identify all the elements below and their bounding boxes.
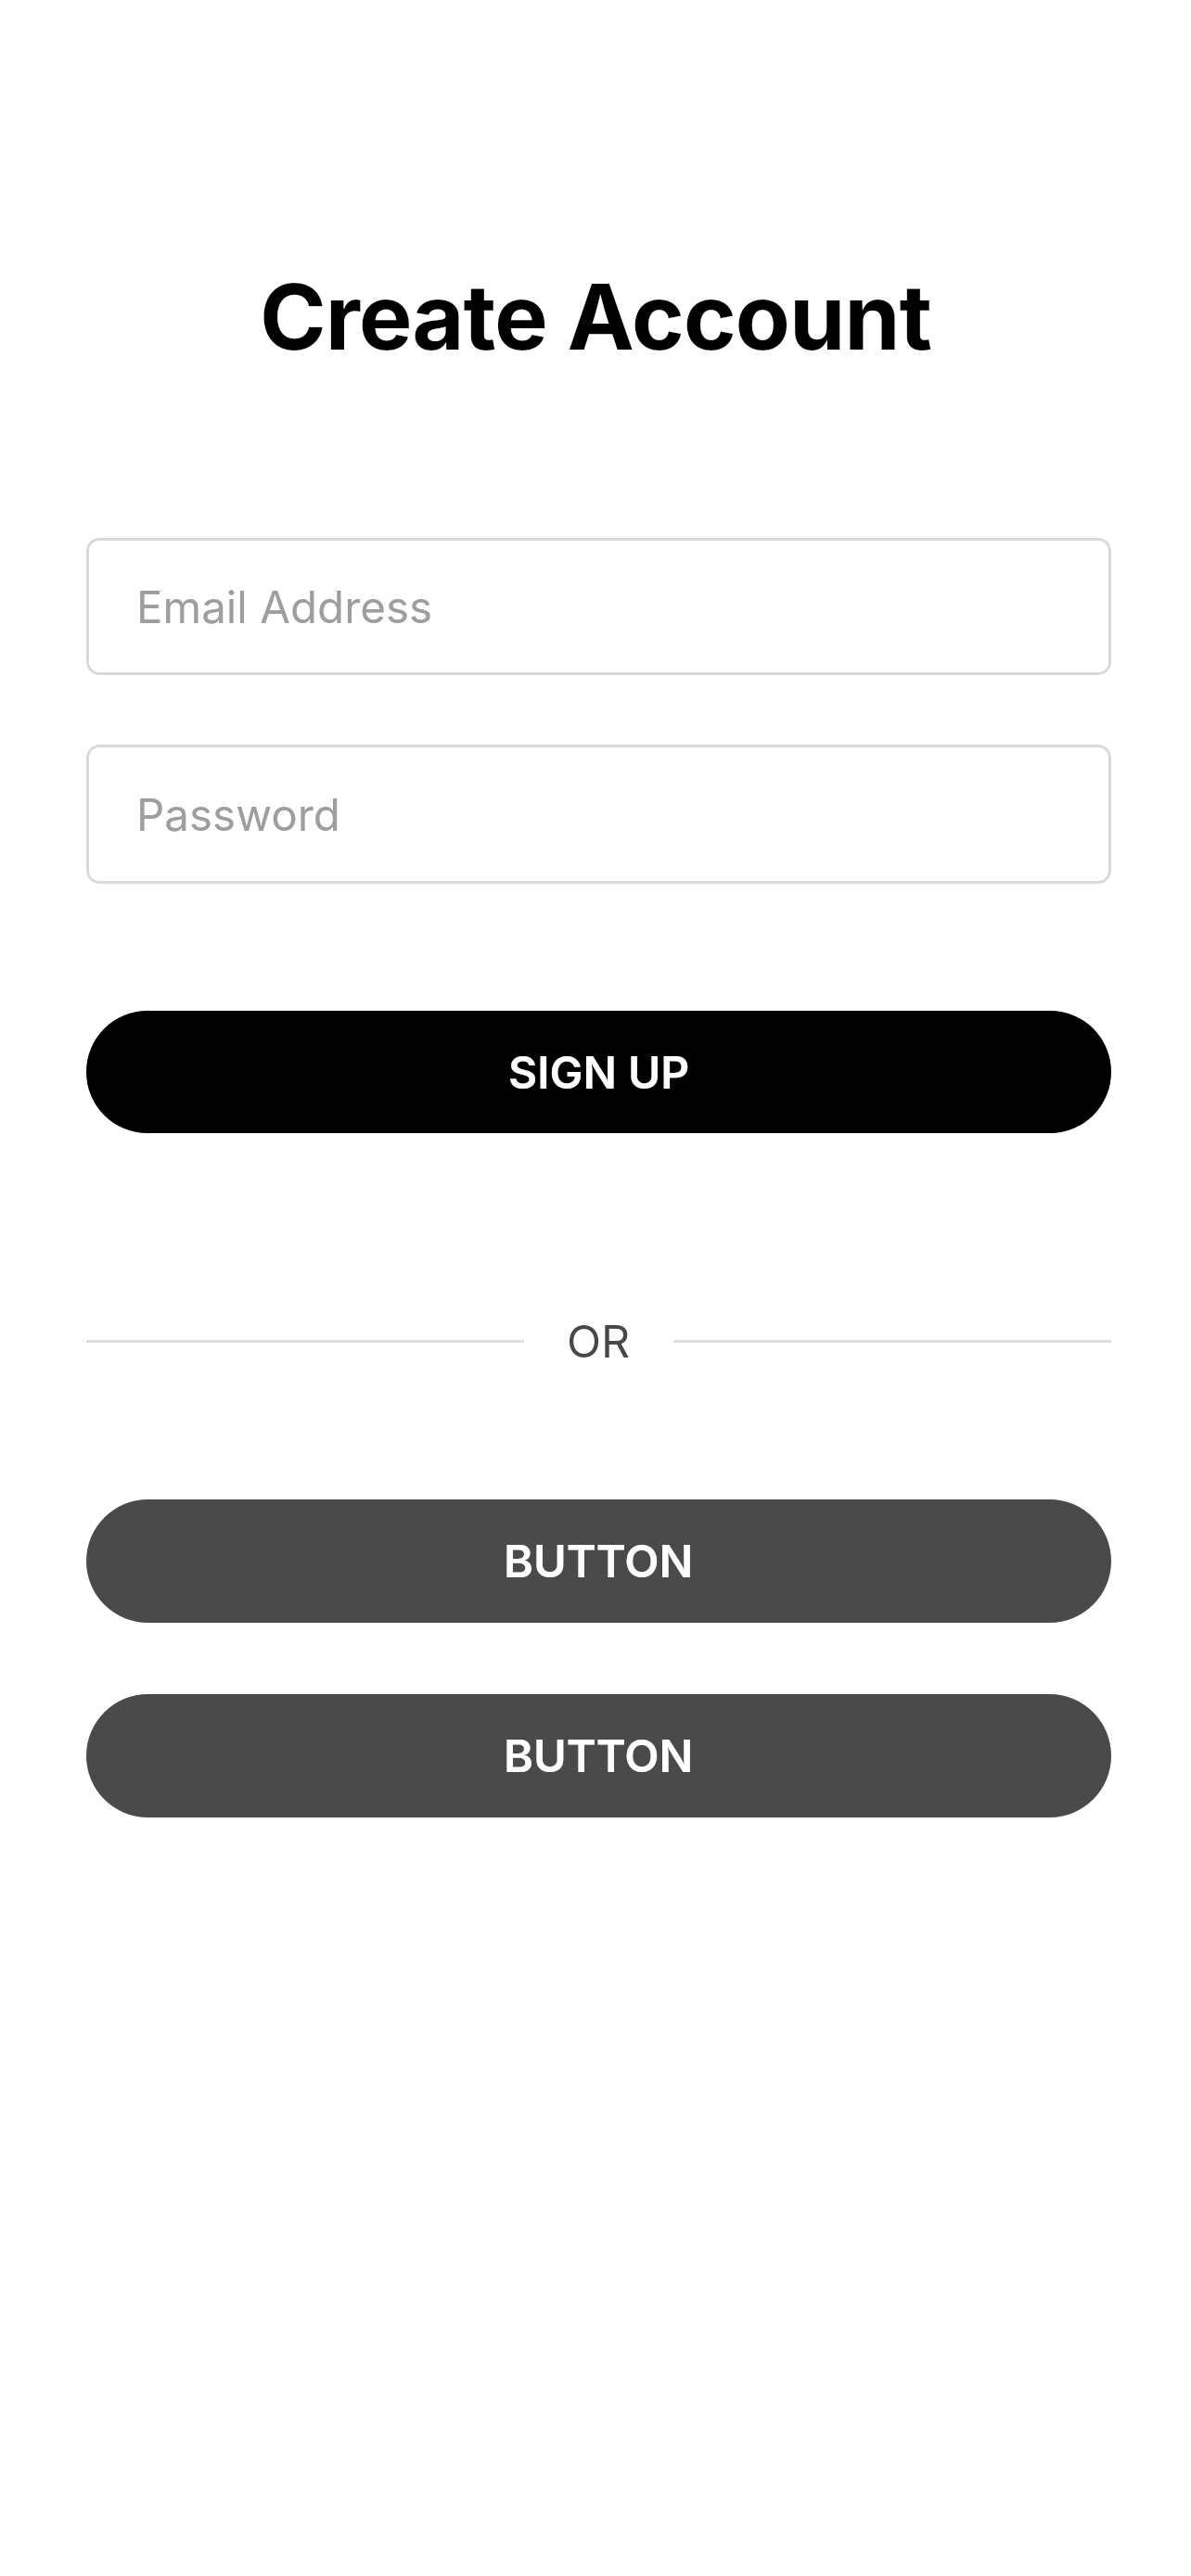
staticText: OR [567, 1314, 631, 1369]
staticText: BUTTON [504, 1534, 694, 1588]
staticText: Create Account [0, 262, 1191, 371]
staticText: BUTTON [504, 1728, 694, 1783]
button[interactable]: BUTTON [86, 1499, 1111, 1623]
button[interactable]: SIGN UP [86, 1011, 1111, 1133]
staticText: SIGN UP [508, 1045, 690, 1099]
button[interactable]: BUTTON [86, 1694, 1111, 1817]
button[interactable]: Password [86, 745, 1111, 884]
staticText: Email Address [136, 580, 433, 633]
staticText: Password [136, 788, 340, 841]
button[interactable]: Email Address [86, 538, 1111, 675]
